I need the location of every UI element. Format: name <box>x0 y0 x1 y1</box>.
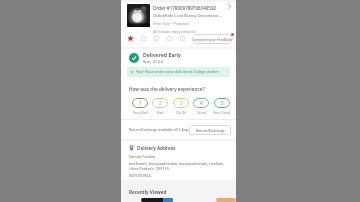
button[interactable] <box>141 198 173 202</box>
other: Open order details <box>225 4 233 12</box>
staticText: 3 <box>180 100 183 106</box>
staticText: Return/Exchange available till 3 Aug <box>129 127 188 132</box>
staticText: Order #178009789706340592 <box>153 5 217 11</box>
staticText: Yay! Your order was delivered 3 days ear… <box>136 69 220 75</box>
button[interactable]: Rate 5 star <box>179 33 192 44</box>
button[interactable]: 3 <box>173 98 189 108</box>
button[interactable]: Order #178009789706340592 <box>127 4 233 35</box>
button[interactable]: 1 <box>132 98 148 108</box>
staticText: Free Size • Prepaid <box>153 21 189 27</box>
staticText: Bad <box>157 110 164 115</box>
staticText: Very Good <box>213 110 231 115</box>
staticText: Recently Viewed <box>129 189 167 195</box>
staticText: 1 <box>139 100 142 106</box>
button[interactable]: Rate 2 star <box>140 33 153 44</box>
button[interactable] <box>216 198 236 202</box>
staticText: Very Bad <box>133 110 148 115</box>
staticText: 9695491834 <box>129 173 151 178</box>
button[interactable]: 4 <box>193 98 209 108</box>
staticText: 2 <box>159 100 162 106</box>
staticText: 5 <box>221 100 224 106</box>
staticText: How was the delivery experience? <box>129 86 205 92</box>
button[interactable]: Rate 3 star <box>153 33 166 44</box>
button[interactable]: Return/Exchange <box>189 125 231 135</box>
staticText: Ok Ok <box>176 110 187 115</box>
button[interactable]: Complete your Feedback <box>192 34 233 44</box>
staticText: Delivered Early <box>143 51 181 58</box>
button[interactable]: Rate 1 star <box>127 33 140 44</box>
button[interactable]: 5 <box>214 98 230 108</box>
staticText: OutonKids Cute Bunny Decorative Unique..… <box>153 13 223 19</box>
staticText: Varsha Pandey <box>129 154 156 159</box>
staticText: Sun, 27 Jul <box>143 59 163 65</box>
staticText: neelkanth, kanyapathshala, kanyapathshal… <box>129 161 232 171</box>
staticText: 4 <box>200 100 203 106</box>
staticText: Good <box>197 110 206 115</box>
staticText: Return/Exchange <box>196 128 225 133</box>
staticText: Delivery Address <box>137 145 176 151</box>
button[interactable]: Rate 4 star <box>166 33 179 44</box>
staticText: Complete your Feedback <box>192 37 233 42</box>
staticText: All issues easy returns <box>153 29 196 35</box>
button[interactable]: 2 <box>152 98 168 108</box>
